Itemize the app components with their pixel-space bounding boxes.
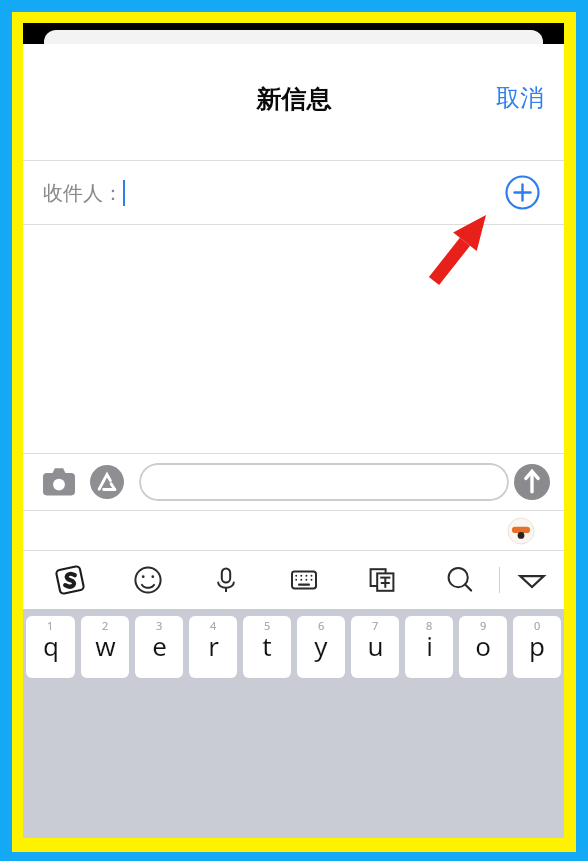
staticText: 0 — [534, 618, 541, 633]
staticText: 取消 — [496, 83, 544, 113]
button[interactable]: 9 — [459, 616, 507, 678]
button[interactable]: 6 — [297, 616, 345, 678]
staticText: 2 — [102, 618, 109, 633]
button[interactable]: Keyboard — [265, 551, 343, 609]
staticText: 收件人： — [43, 181, 123, 206]
staticText: w — [95, 628, 116, 663]
staticText: 3 — [156, 618, 163, 633]
button[interactable]: 2 — [81, 616, 129, 678]
button[interactable]: 8 — [405, 616, 453, 678]
staticText: 5 — [264, 618, 271, 633]
button[interactable]: Send — [514, 464, 550, 500]
staticText: 6 — [318, 618, 325, 633]
button[interactable]: Input method — [31, 551, 109, 609]
staticText: 8 — [426, 618, 433, 633]
button[interactable]: Translate — [343, 551, 421, 609]
staticText: p — [529, 628, 545, 663]
staticText: u — [367, 628, 384, 663]
button[interactable]: 4 — [189, 616, 237, 678]
button[interactable]: 5 — [243, 616, 291, 678]
staticText: i — [426, 628, 433, 663]
staticText: q — [43, 628, 59, 663]
button[interactable]: 7 — [351, 616, 399, 678]
button[interactable] — [139, 463, 509, 501]
staticText: y — [314, 628, 328, 663]
button[interactable]: App Store — [85, 460, 129, 504]
button[interactable]: Emoji — [109, 551, 187, 609]
button[interactable]: Search — [421, 551, 499, 609]
staticText: 7 — [372, 618, 379, 633]
button[interactable]: 3 — [135, 616, 183, 678]
staticText: r — [208, 628, 219, 663]
button[interactable]: 1 — [26, 616, 75, 678]
staticText: 1 — [47, 618, 54, 633]
button[interactable]: 取消 — [484, 71, 556, 125]
button[interactable]: Hide keyboard — [500, 551, 564, 609]
button[interactable]: 0 — [513, 616, 561, 678]
button[interactable]: Camera — [37, 460, 81, 504]
staticText: e — [152, 628, 167, 663]
staticText: 新信息 — [256, 84, 331, 115]
staticText: 9 — [480, 618, 487, 633]
staticText: t — [262, 628, 272, 663]
staticText: o — [475, 628, 491, 663]
button[interactable]: Add recipient — [505, 175, 540, 210]
button[interactable]: Voice input — [187, 551, 265, 609]
staticText: 4 — [210, 618, 217, 633]
button[interactable]: Emoji — [508, 518, 534, 544]
